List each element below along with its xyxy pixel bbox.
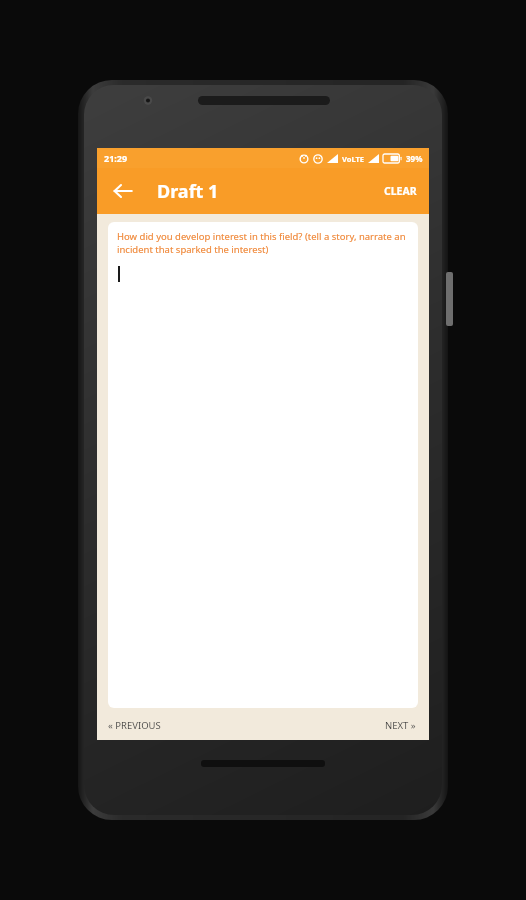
button[interactable]: NEXT » <box>375 713 429 738</box>
button[interactable]: CLEAR <box>372 174 429 208</box>
staticText: 21:29 <box>104 152 128 164</box>
button[interactable]: How did you develop interest in this fie… <box>108 222 418 708</box>
staticText: CLEAR <box>384 184 417 198</box>
staticText: Draft 1 <box>157 179 219 204</box>
other: Power button <box>446 272 453 326</box>
staticText: How did you develop interest in this fie… <box>117 230 409 256</box>
button[interactable]: « PREVIOUS <box>97 713 171 738</box>
staticText: VoLTE <box>342 154 364 164</box>
staticText: « PREVIOUS <box>108 719 161 732</box>
staticText: 39% <box>406 153 423 164</box>
button[interactable]: Back <box>103 171 143 211</box>
staticText: NEXT » <box>385 719 416 732</box>
